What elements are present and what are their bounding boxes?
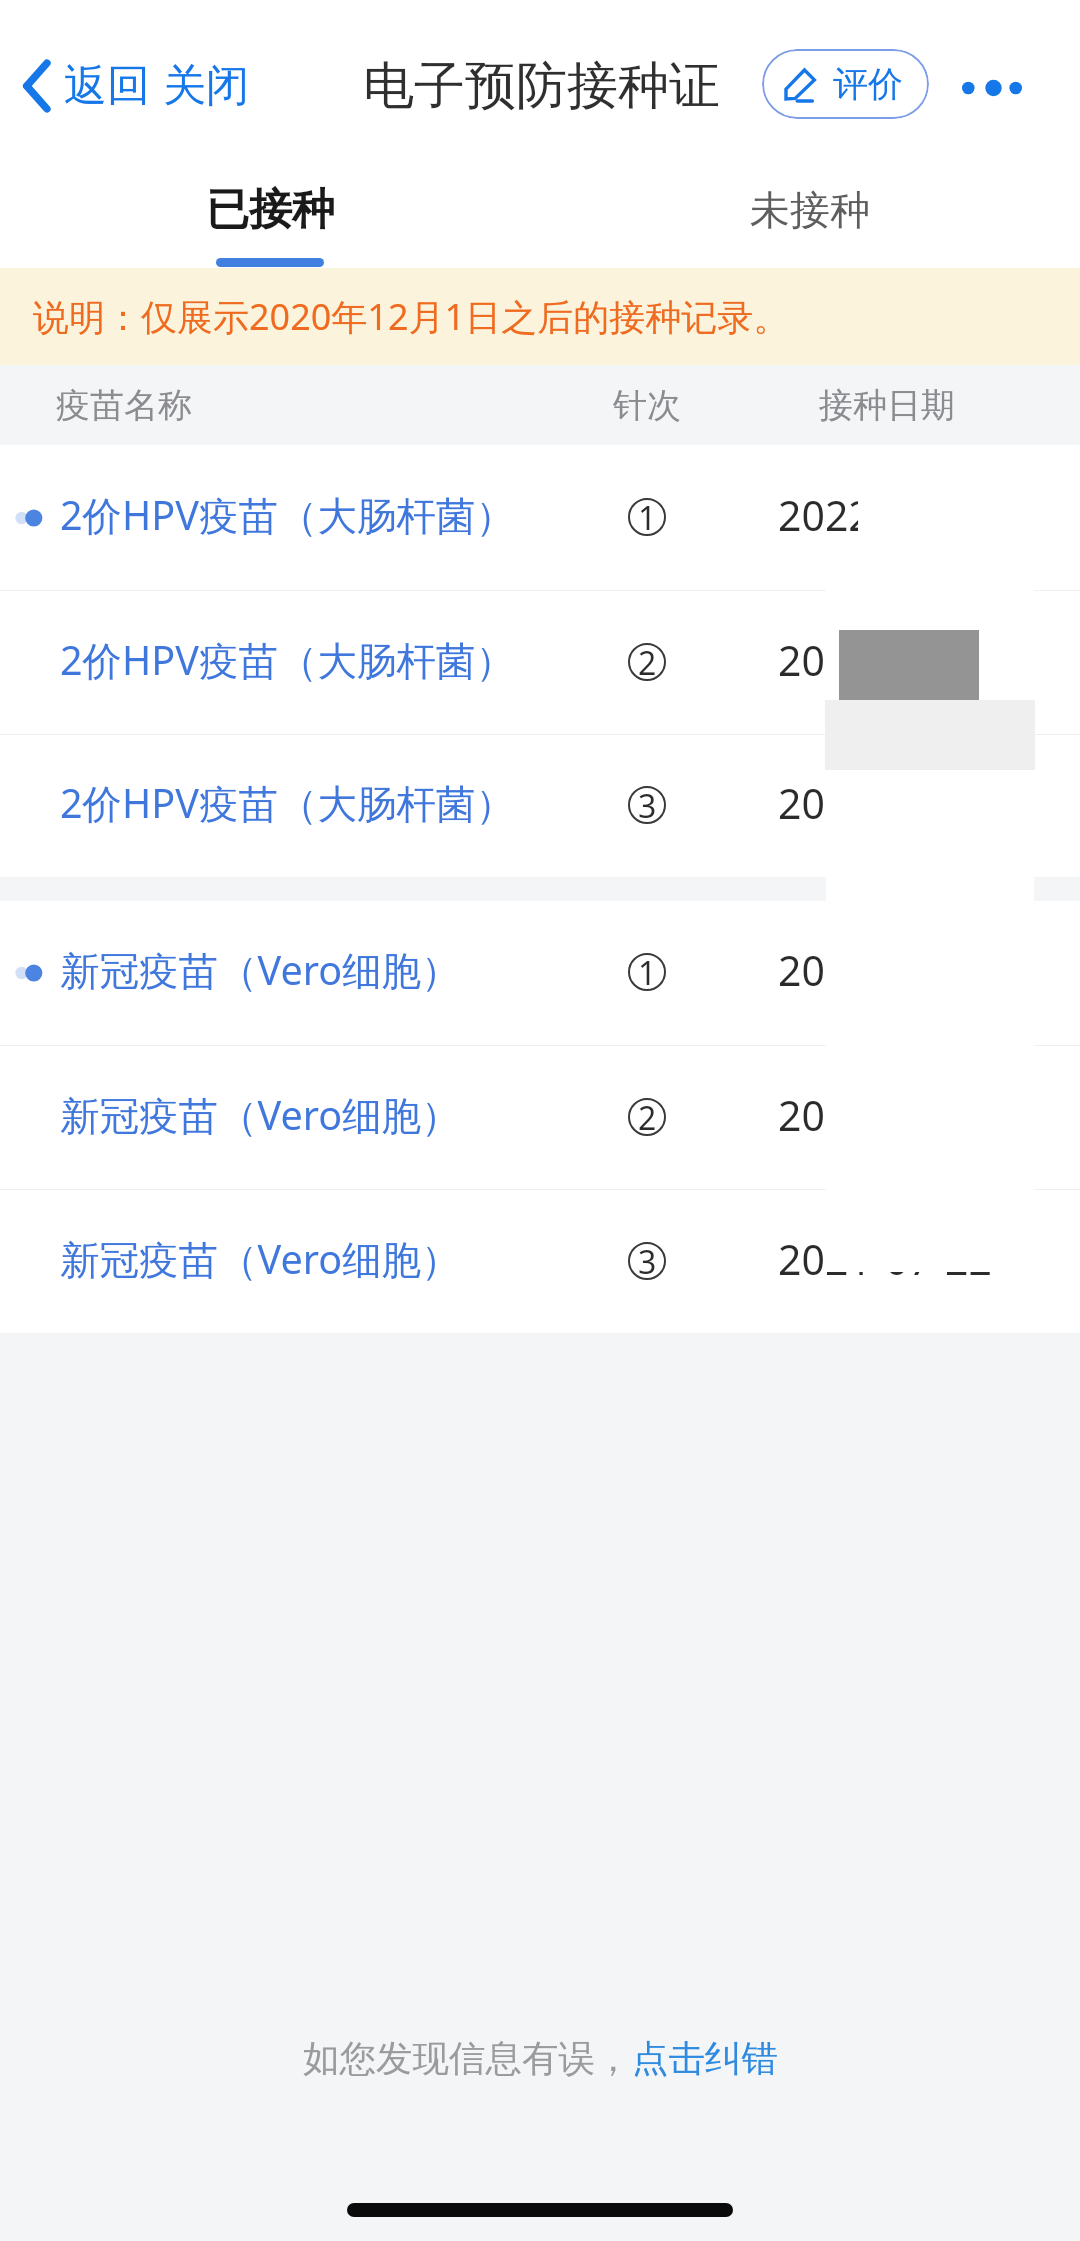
staticText: 2021-07-22 <box>778 1231 993 1287</box>
button[interactable]: 评价 <box>762 49 929 119</box>
staticText: 2价HPV疫苗（大肠杆菌） <box>60 488 515 542</box>
button[interactable]: 2价HPV疫苗（大肠杆菌） <box>0 445 1080 590</box>
button[interactable]: 2价HPV疫苗（大肠杆菌） <box>0 735 1080 877</box>
staticText: 2023-01-05 <box>778 775 993 831</box>
staticText: 返回 <box>64 59 150 113</box>
staticText: 2 <box>638 1096 657 1134</box>
button[interactable]: 已接种 <box>0 140 540 268</box>
staticText: 1 <box>638 951 657 989</box>
staticText: 说明：仅展示2020年12月1日之后的接种记录。 <box>33 292 790 341</box>
button[interactable]: More options <box>948 53 1036 123</box>
staticText: 新冠疫苗（Vero细胞） <box>60 1088 461 1142</box>
staticText: 2 <box>638 641 657 679</box>
button[interactable]: 点击纠错 <box>632 2036 778 2082</box>
button[interactable]: 关闭 <box>163 59 249 113</box>
button[interactable]: 返回 <box>0 49 154 123</box>
staticText: 评价 <box>833 62 903 106</box>
staticText: 3 <box>638 1240 657 1278</box>
staticText: 2022-06-08 <box>778 487 993 543</box>
staticText: 2022-08-10 <box>778 632 993 688</box>
staticText: 2价HPV疫苗（大肠杆菌） <box>60 776 515 830</box>
button[interactable]: 新冠疫苗（Vero细胞） <box>0 1190 1080 1333</box>
staticText: 如您发现信息有误， <box>303 2036 632 2082</box>
staticText: 2021-04-18 <box>778 1087 993 1143</box>
staticText: 新冠疫苗（Vero细胞） <box>60 943 461 997</box>
staticText: 接种日期 <box>819 384 955 427</box>
staticText: 疫苗名称 <box>56 384 192 427</box>
staticText: 新冠疫苗（Vero细胞） <box>60 1232 461 1286</box>
staticText: 针次 <box>613 384 681 427</box>
staticText: 1 <box>638 496 657 534</box>
staticText: 2价HPV疫苗（大肠杆菌） <box>60 633 515 687</box>
staticText: 电子预防接种证 <box>363 54 720 118</box>
button[interactable]: 2价HPV疫苗（大肠杆菌） <box>0 591 1080 734</box>
staticText: 2021-03-12 <box>778 942 993 998</box>
staticText: 已接种 <box>206 183 335 237</box>
staticText: 3 <box>638 784 657 822</box>
staticText: 未接种 <box>750 185 870 235</box>
button[interactable]: 新冠疫苗（Vero细胞） <box>0 1046 1080 1189</box>
button[interactable]: 新冠疫苗（Vero细胞） <box>0 901 1080 1045</box>
button[interactable]: 未接种 <box>540 140 1080 268</box>
